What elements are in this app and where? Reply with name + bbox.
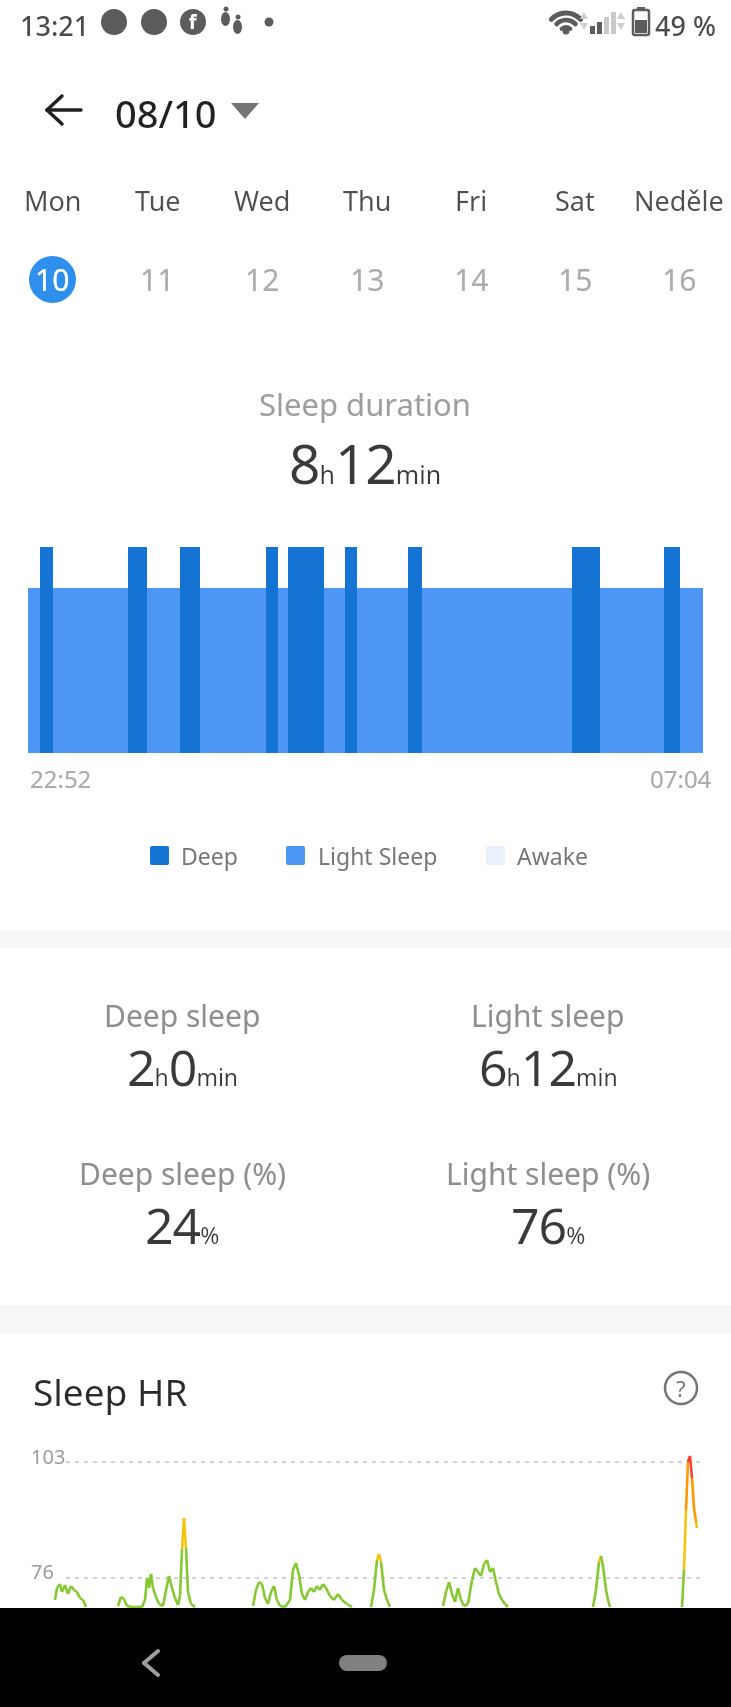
staticText: Sleep HR — [33, 1366, 188, 1416]
staticText: Thu — [343, 182, 392, 219]
button[interactable] — [339, 1655, 387, 1671]
staticText: 14 — [454, 259, 489, 300]
button[interactable]: 12 — [239, 256, 286, 303]
staticText: Awake — [517, 840, 588, 871]
staticText: Tue — [135, 182, 181, 219]
button[interactable]: 10 — [29, 256, 76, 303]
button[interactable]: 13 — [344, 256, 391, 303]
staticText: Wed — [234, 182, 291, 219]
staticText: 22:52 — [30, 762, 92, 795]
button[interactable]: 08/10 — [113, 85, 263, 137]
staticText: Neděle — [634, 182, 724, 219]
staticText: 10 — [35, 259, 70, 300]
button[interactable]: 14 — [448, 256, 495, 303]
staticText: 76% — [511, 1191, 586, 1259]
button[interactable]: 11 — [134, 256, 181, 303]
staticText: Light Sleep — [318, 840, 438, 871]
staticText: 07:04 — [650, 762, 712, 795]
button[interactable]: 15 — [552, 256, 599, 303]
staticText: Fri — [455, 182, 488, 219]
staticText: 2h0min — [127, 1033, 239, 1101]
button[interactable] — [35, 85, 91, 135]
staticText: 11 — [140, 259, 175, 300]
staticText: 8h12min — [289, 425, 442, 500]
button[interactable]: 16 — [656, 256, 703, 303]
staticText: 49 % — [655, 7, 716, 44]
staticText: 13:21 — [20, 7, 90, 44]
button[interactable]: ? — [662, 1369, 700, 1407]
staticText: 76 — [31, 1558, 54, 1585]
staticText: ? — [676, 1373, 686, 1403]
staticText: 6h12min — [479, 1033, 618, 1101]
staticText: 13 — [350, 259, 385, 300]
staticText: 15 — [558, 259, 593, 300]
staticText: 16 — [662, 259, 697, 300]
staticText: Deep sleep (%) — [79, 1153, 287, 1194]
staticText: Mon — [24, 182, 82, 219]
staticText: Sleep duration — [259, 383, 472, 425]
staticText: 24% — [145, 1191, 220, 1259]
staticText: 08/10 — [115, 87, 217, 139]
staticText: Deep — [181, 840, 238, 871]
staticText: Light sleep — [471, 995, 625, 1036]
staticText: f — [189, 9, 197, 35]
button[interactable] — [120, 1638, 180, 1688]
staticText: Light sleep (%) — [446, 1153, 651, 1194]
staticText: Deep sleep — [104, 995, 261, 1036]
staticText: 103 — [31, 1443, 66, 1470]
staticText: 12 — [245, 259, 280, 300]
staticText: Sat — [555, 182, 595, 219]
